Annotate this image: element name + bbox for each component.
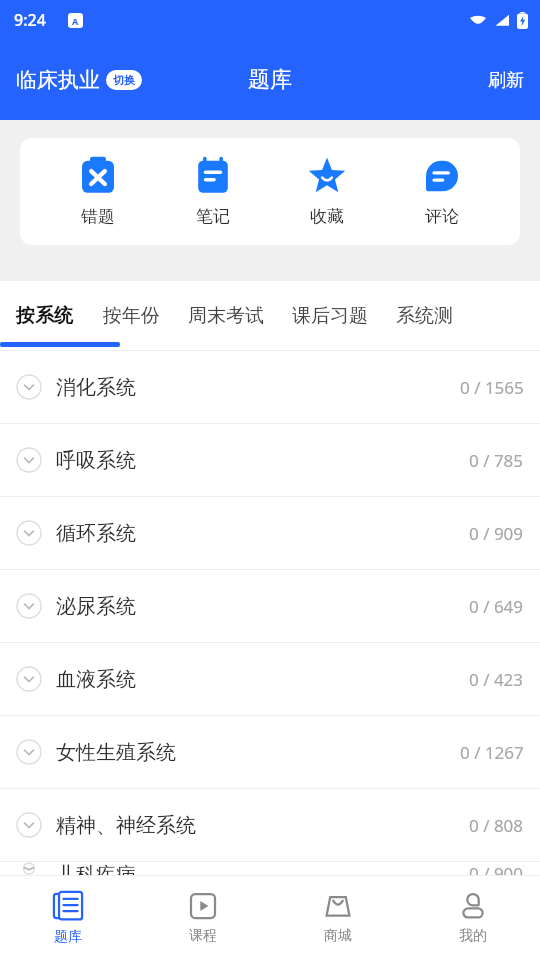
button[interactable]: 周末考试 xyxy=(174,281,278,351)
button[interactable]: 课后习题 xyxy=(278,281,382,351)
button[interactable]: 儿科疾病 xyxy=(0,862,540,875)
staticText: 切换 xyxy=(113,73,135,87)
staticText: 女性生殖系统 xyxy=(56,740,176,765)
button[interactable]: 笔记 xyxy=(177,154,249,229)
staticText: 精神、神经系统 xyxy=(56,813,196,838)
button[interactable]: 我的 xyxy=(405,876,540,960)
button[interactable]: 循环系统 xyxy=(0,497,540,569)
staticText: 0 / 649 xyxy=(469,595,524,618)
staticText: 系统测 xyxy=(396,304,453,328)
staticText: 临床执业 xyxy=(16,67,100,93)
button[interactable]: 刷新 xyxy=(472,59,540,102)
button[interactable]: 课程 xyxy=(135,876,270,960)
staticText: A xyxy=(72,15,79,27)
staticText: 泌尿系统 xyxy=(56,594,136,619)
staticText: 0 / 808 xyxy=(469,814,524,837)
button[interactable]: 评论 xyxy=(406,154,478,229)
button[interactable]: 系统测 xyxy=(382,281,467,351)
staticText: 按系统 xyxy=(16,304,73,328)
staticText: 0 / 785 xyxy=(469,449,524,472)
button[interactable]: 按年份 xyxy=(89,281,174,351)
button[interactable]: 收藏 xyxy=(291,154,363,229)
button[interactable]: 精神、神经系统 xyxy=(0,789,540,861)
staticText: 我的 xyxy=(459,927,487,945)
button[interactable]: 血液系统 xyxy=(0,643,540,715)
staticText: 循环系统 xyxy=(56,521,136,546)
staticText: 课程 xyxy=(189,927,217,945)
staticText: 0 / 900 xyxy=(469,862,524,875)
staticText: 题库 xyxy=(248,66,292,94)
button[interactable]: 女性生殖系统 xyxy=(0,716,540,788)
staticText: 0 / 1267 xyxy=(460,741,524,764)
staticText: 血液系统 xyxy=(56,667,136,692)
staticText: 商城 xyxy=(324,927,352,945)
button[interactable]: 消化系统 xyxy=(0,351,540,423)
button[interactable]: 错题 xyxy=(62,154,134,229)
staticText: 呼吸系统 xyxy=(56,448,136,473)
button[interactable]: 按系统 xyxy=(0,281,89,351)
button[interactable]: 泌尿系统 xyxy=(0,570,540,642)
button[interactable]: 呼吸系统 xyxy=(0,424,540,496)
staticText: 收藏 xyxy=(310,206,344,227)
staticText: 0 / 909 xyxy=(469,522,524,545)
staticText: 错题 xyxy=(81,206,115,227)
staticText: 0 / 423 xyxy=(469,668,524,691)
staticText: 0 / 1565 xyxy=(460,376,524,399)
staticText: 按年份 xyxy=(103,304,160,328)
staticText: 9:24 xyxy=(14,9,46,31)
staticText: 消化系统 xyxy=(56,375,136,400)
staticText: 儿科疾病 xyxy=(56,862,136,875)
staticText: 周末考试 xyxy=(188,304,264,328)
button[interactable]: 商城 xyxy=(270,876,405,960)
button[interactable]: 题库 xyxy=(0,876,135,960)
staticText: 笔记 xyxy=(196,206,230,227)
staticText: 评论 xyxy=(425,206,459,227)
staticText: 课后习题 xyxy=(292,304,368,328)
staticText: 刷新 xyxy=(488,69,524,92)
button[interactable]: 临床执业 xyxy=(16,61,142,99)
staticText: 题库 xyxy=(54,928,82,946)
